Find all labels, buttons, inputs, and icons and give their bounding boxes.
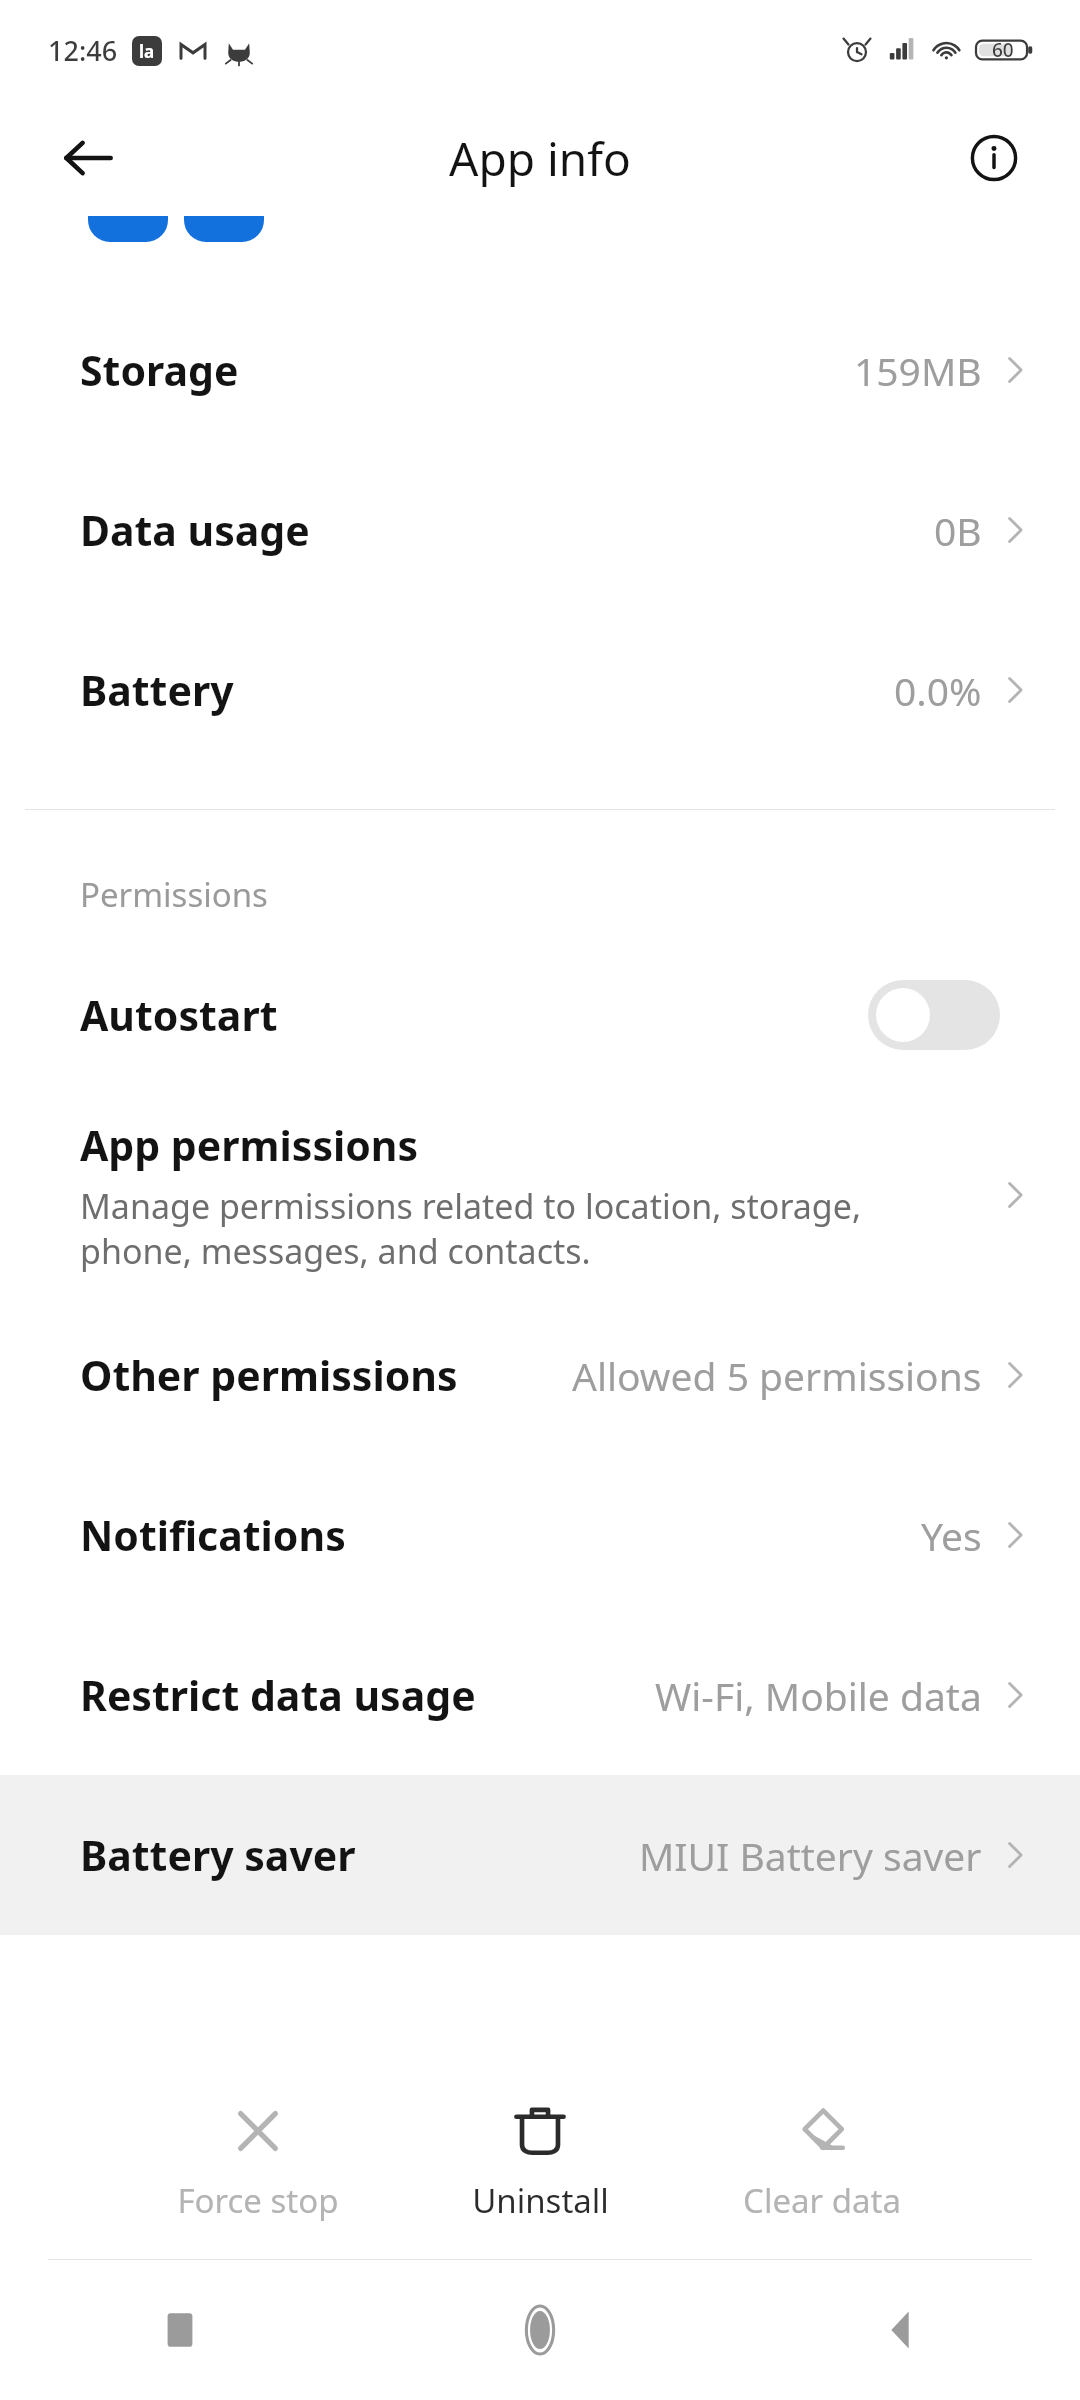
button[interactable]: App details bbox=[956, 120, 1032, 196]
button[interactable]: App permissions bbox=[0, 1095, 1080, 1295]
button[interactable]: Back bbox=[720, 2260, 1080, 2400]
button[interactable]: Storage bbox=[0, 290, 1080, 450]
button[interactable]: Data usage bbox=[0, 450, 1080, 610]
staticText: App permissions bbox=[80, 1117, 419, 1173]
staticText: Autostart bbox=[80, 987, 278, 1043]
staticText: Notifications bbox=[80, 1507, 346, 1563]
button[interactable]: Notifications bbox=[0, 1455, 1080, 1615]
button[interactable]: Other permissions bbox=[0, 1295, 1080, 1455]
staticText: App info bbox=[449, 127, 631, 190]
staticText: Restrict data usage bbox=[80, 1667, 476, 1723]
staticText: la bbox=[139, 40, 155, 63]
button[interactable]: Battery bbox=[0, 610, 1080, 770]
staticText: 60 bbox=[992, 37, 1014, 63]
staticText: Force stop bbox=[177, 2178, 339, 2223]
button[interactable]: Recents bbox=[0, 2260, 360, 2400]
staticText: Uninstall bbox=[472, 2178, 609, 2223]
staticText: Allowed 5 permissions bbox=[572, 1349, 982, 1402]
button[interactable]: Restrict data usage bbox=[0, 1615, 1080, 1775]
button[interactable]: Back bbox=[50, 120, 126, 196]
staticText: Data usage bbox=[80, 502, 310, 558]
button[interactable]: Uninstall bbox=[422, 2090, 658, 2233]
staticText: Manage permissions related to location, … bbox=[80, 1183, 862, 1274]
staticText: Storage bbox=[80, 342, 239, 398]
staticText: 12:46 bbox=[48, 32, 118, 69]
button[interactable]: Autostart bbox=[0, 935, 1080, 1095]
staticText: Yes bbox=[921, 1509, 982, 1562]
button[interactable]: Force stop bbox=[140, 2090, 376, 2233]
button[interactable]: Battery saver bbox=[0, 1775, 1080, 1935]
staticText: 0.0% bbox=[894, 664, 982, 717]
button[interactable]: Home bbox=[360, 2260, 720, 2400]
staticText: Wi-Fi, Mobile data bbox=[655, 1669, 982, 1722]
staticText: Permissions bbox=[80, 872, 268, 917]
button[interactable]: Clear data bbox=[704, 2090, 940, 2233]
staticText: Other permissions bbox=[80, 1347, 458, 1403]
staticText: 159MB bbox=[854, 344, 982, 397]
staticText: Clear data bbox=[743, 2178, 901, 2223]
staticText: Battery saver bbox=[80, 1827, 356, 1883]
staticText: 0B bbox=[934, 504, 982, 557]
staticText: MIUI Battery saver bbox=[639, 1829, 982, 1882]
staticText: Battery bbox=[80, 662, 234, 718]
